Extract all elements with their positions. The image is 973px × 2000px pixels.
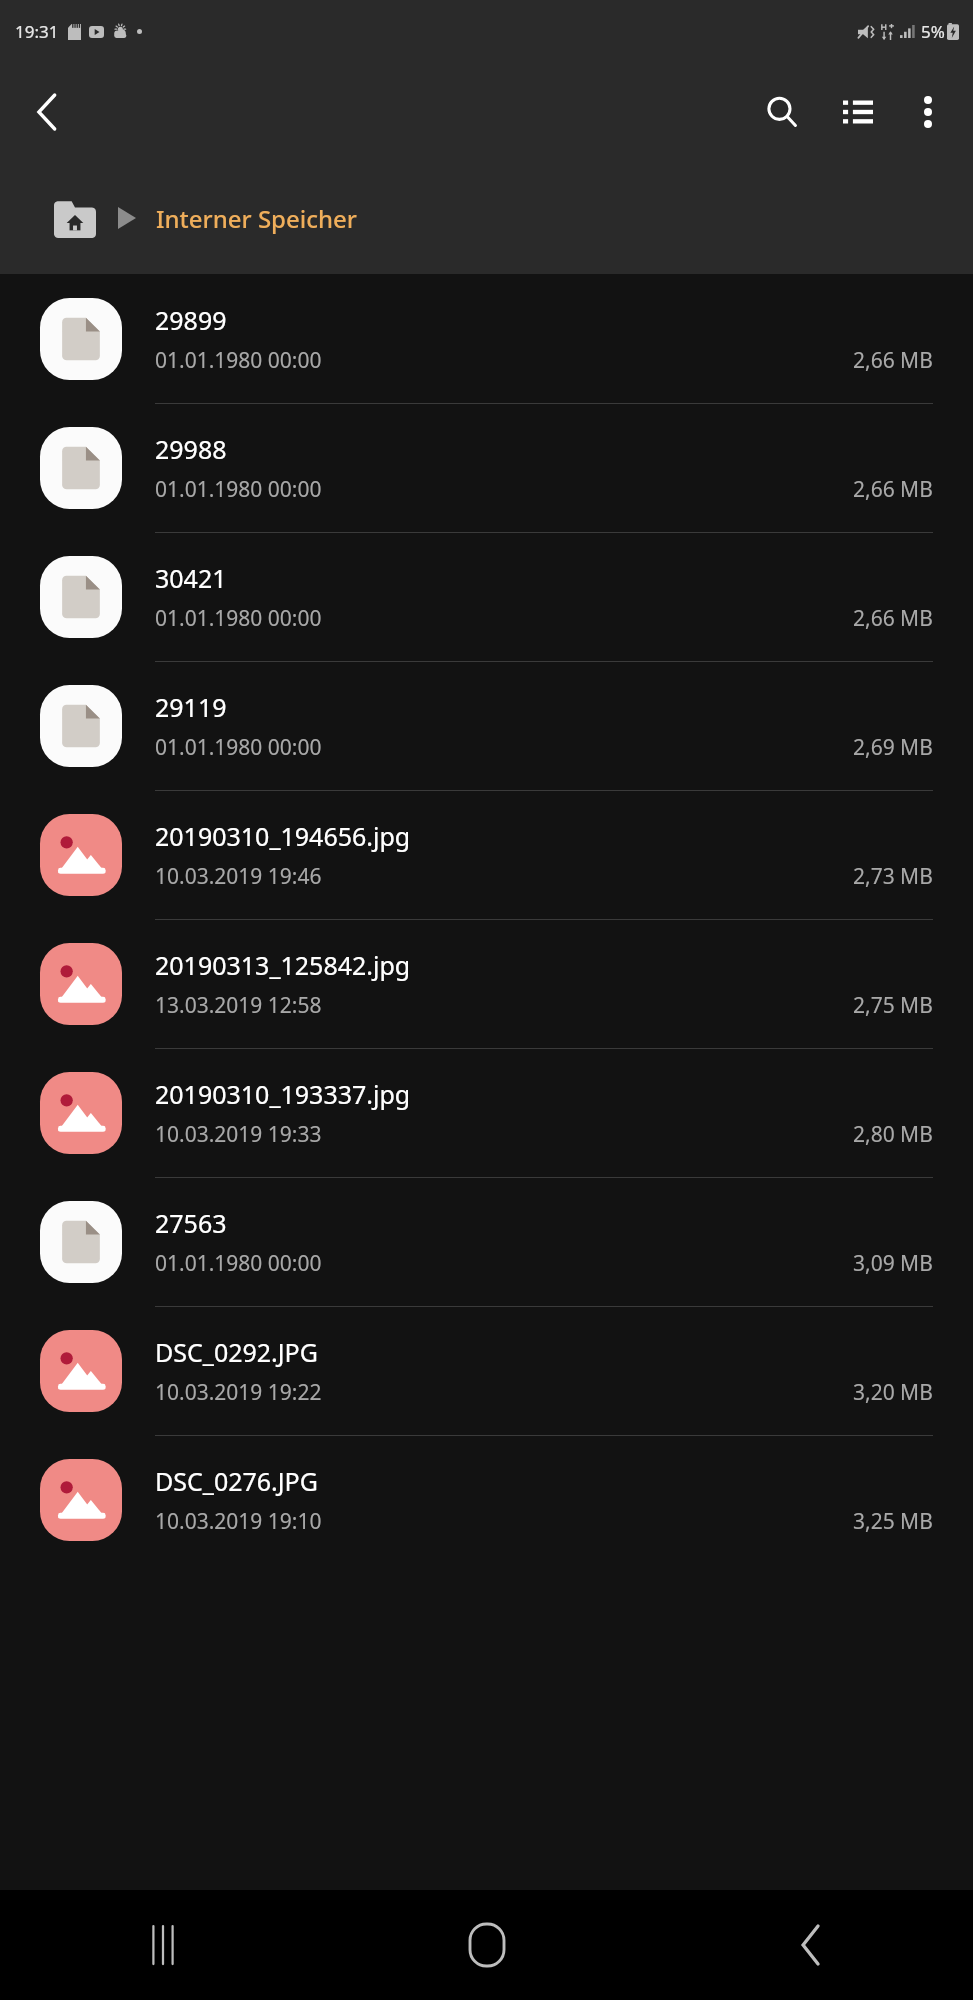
staticText: DSC_0276.JPG: [155, 1464, 318, 1498]
staticText: 2,75 MB: [853, 991, 933, 1020]
button[interactable]: Home: [325, 1890, 649, 2000]
button[interactable]: Back: [18, 82, 78, 142]
button[interactable]: 20190310_194656.jpg: [0, 790, 973, 919]
staticText: 01.01.1980 00:00: [155, 475, 322, 504]
staticText: 10.03.2019 19:33: [155, 1120, 322, 1149]
staticText: 10.03.2019 19:22: [155, 1378, 322, 1407]
button[interactable]: Interner Speicher: [154, 202, 359, 235]
button[interactable]: 29899: [0, 274, 973, 403]
staticText: 2,80 MB: [853, 1120, 933, 1149]
staticText: 13.03.2019 12:58: [155, 991, 322, 1020]
staticText: 29899: [155, 303, 227, 337]
button[interactable]: Back: [649, 1890, 973, 2000]
staticText: 01.01.1980 00:00: [155, 733, 322, 762]
staticText: 2,69 MB: [853, 733, 933, 762]
button[interactable]: Search: [749, 79, 815, 145]
button[interactable]: Recent apps: [0, 1890, 325, 2000]
staticText: 19:31: [15, 20, 59, 43]
staticText: 30421: [155, 561, 227, 595]
staticText: 5%: [921, 20, 945, 43]
staticText: 01.01.1980 00:00: [155, 346, 322, 375]
button[interactable]: DSC_0292.JPG: [0, 1306, 973, 1435]
button[interactable]: More options: [895, 79, 961, 145]
button[interactable]: View as list: [825, 79, 891, 145]
button[interactable]: 29119: [0, 661, 973, 790]
staticText: 2,66 MB: [853, 604, 933, 633]
staticText: 3,20 MB: [853, 1378, 933, 1407]
staticText: 3,09 MB: [853, 1249, 933, 1278]
staticText: 29988: [155, 432, 227, 466]
staticText: 01.01.1980 00:00: [155, 604, 322, 633]
staticText: 10.03.2019 19:46: [155, 862, 322, 891]
staticText: 20190313_125842.jpg: [155, 948, 411, 982]
staticText: 29119: [155, 690, 227, 724]
staticText: 01.01.1980 00:00: [155, 1249, 322, 1278]
button[interactable]: 27563: [0, 1177, 973, 1306]
button[interactable]: 30421: [0, 532, 973, 661]
staticText: 2,66 MB: [853, 346, 933, 375]
button[interactable]: 20190310_193337.jpg: [0, 1048, 973, 1177]
staticText: Interner Speicher: [156, 202, 357, 235]
staticText: 27563: [155, 1206, 227, 1240]
button[interactable]: 20190313_125842.jpg: [0, 919, 973, 1048]
staticText: 2,73 MB: [853, 862, 933, 891]
staticText: 10.03.2019 19:10: [155, 1507, 322, 1536]
button[interactable]: [50, 194, 100, 242]
button[interactable]: 29988: [0, 403, 973, 532]
staticText: DSC_0292.JPG: [155, 1335, 318, 1369]
button[interactable]: DSC_0276.JPG: [0, 1435, 973, 1564]
staticText: 2,66 MB: [853, 475, 933, 504]
staticText: 3,25 MB: [853, 1507, 933, 1536]
staticText: 20190310_193337.jpg: [155, 1077, 411, 1111]
staticText: 20190310_194656.jpg: [155, 819, 411, 853]
